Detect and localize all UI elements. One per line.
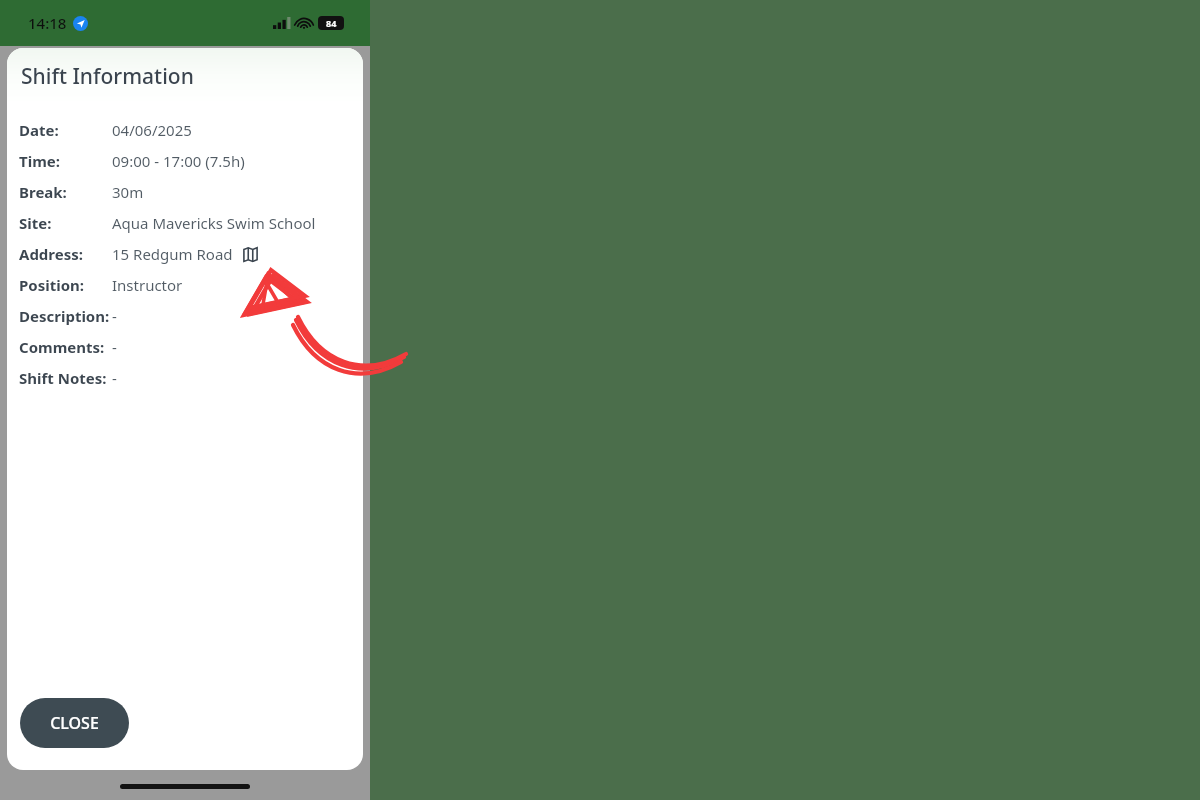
staticText: Site: xyxy=(19,213,112,233)
staticText: Position: xyxy=(19,275,112,295)
staticText: 09:00 - 17:00 (7.5h) xyxy=(112,151,245,171)
staticText: - xyxy=(112,306,117,326)
button[interactable]: Site: xyxy=(7,207,363,238)
staticText: 14:18 xyxy=(28,13,67,33)
staticText: - xyxy=(112,337,117,357)
button[interactable]: Open address in map xyxy=(241,245,259,263)
staticText: Date: xyxy=(19,120,112,140)
staticText: 15 Redgum Road xyxy=(112,244,233,264)
button[interactable]: Shift Notes: xyxy=(7,362,363,393)
staticText: 04/06/2025 xyxy=(112,120,192,140)
staticText: Description: xyxy=(19,306,112,326)
staticText: 30m xyxy=(112,182,144,202)
staticText: Shift Information xyxy=(21,62,194,91)
button[interactable]: Address: xyxy=(7,238,363,269)
staticText: - xyxy=(112,368,117,388)
staticText: Instructor xyxy=(112,275,183,295)
staticText: Aqua Mavericks Swim School xyxy=(112,213,316,233)
button[interactable]: Date: xyxy=(7,114,363,145)
button[interactable]: Description: xyxy=(7,300,363,331)
button[interactable]: CLOSE xyxy=(20,698,129,748)
staticText: Address: xyxy=(19,244,112,264)
button[interactable]: Break: xyxy=(7,176,363,207)
staticText: 84 xyxy=(326,17,337,29)
staticText: Comments: xyxy=(19,337,112,357)
staticText: Shift Notes: xyxy=(19,368,112,388)
button[interactable]: Time: xyxy=(7,145,363,176)
staticText: Break: xyxy=(19,182,112,202)
staticText: CLOSE xyxy=(50,712,99,734)
staticText: Time: xyxy=(19,151,112,171)
button[interactable]: Comments: xyxy=(7,331,363,362)
button[interactable]: Position: xyxy=(7,269,363,300)
